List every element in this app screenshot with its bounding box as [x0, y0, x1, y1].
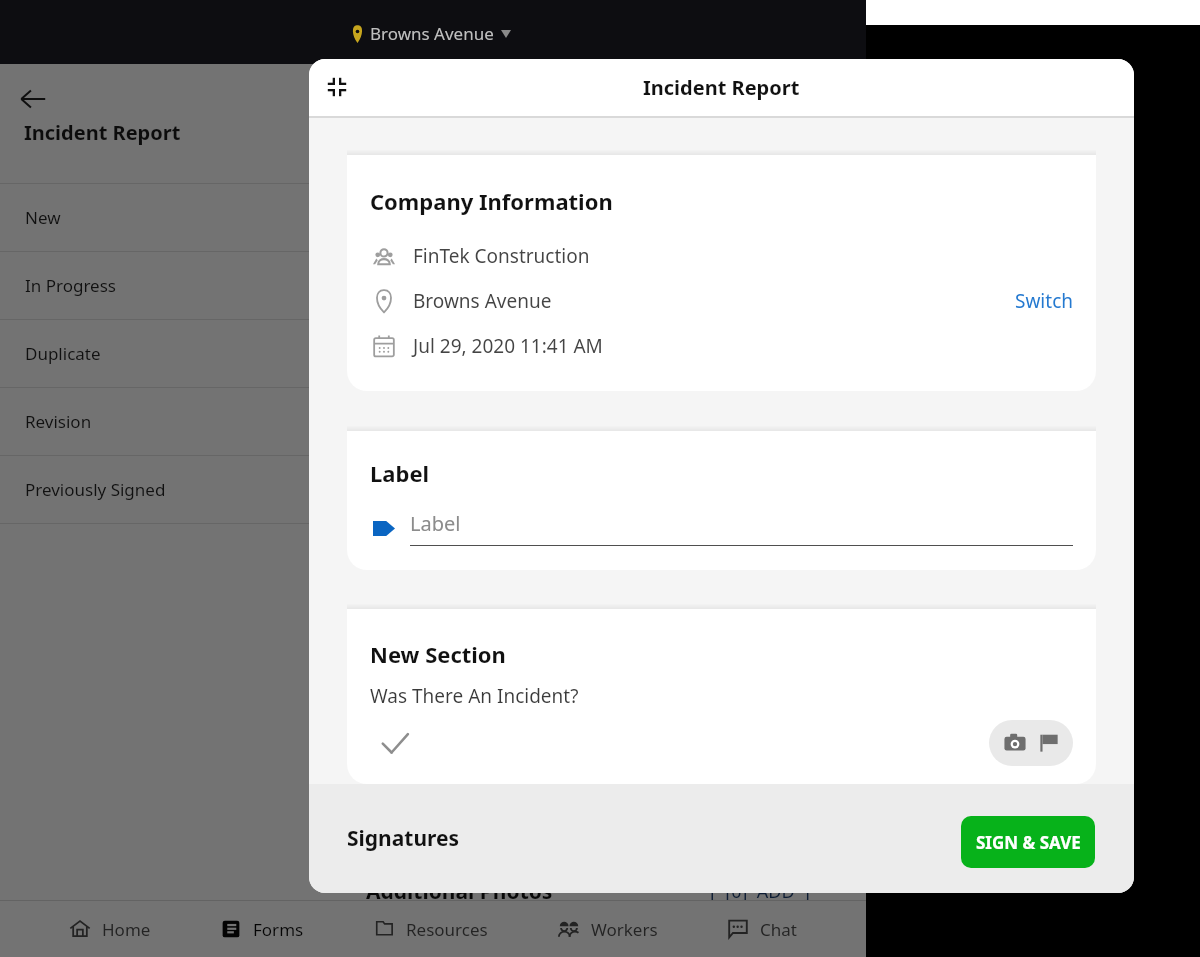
button[interactable]: Home: [69, 901, 151, 957]
button[interactable]: SIGN & SAVE: [961, 816, 1095, 868]
button[interactable]: Switch: [1015, 288, 1073, 314]
staticText: Signatures: [347, 824, 460, 853]
staticText: Duplicate: [25, 342, 101, 365]
staticText: Browns Avenue: [413, 288, 552, 314]
staticText: Label: [410, 510, 461, 537]
staticText: Company Information: [370, 186, 613, 216]
staticText: Browns Avenue: [370, 22, 494, 45]
staticText: Incident Report: [24, 119, 181, 146]
staticText: In Progress: [25, 274, 116, 297]
button[interactable]: New: [0, 184, 866, 251]
button[interactable]: Chat: [727, 901, 797, 957]
staticText: Was There An Incident?: [370, 683, 579, 709]
button[interactable]: Duplicate: [0, 320, 866, 387]
staticText: Revision: [25, 410, 92, 433]
button[interactable]: Collapse: [327, 77, 347, 97]
button[interactable]: Revision: [0, 388, 866, 455]
button[interactable]: Workers: [558, 901, 658, 957]
staticText: Home: [102, 918, 151, 941]
button[interactable]: Forms: [220, 901, 304, 957]
staticText: Forms: [253, 918, 304, 941]
staticText: Switch: [1015, 288, 1073, 314]
staticText: Label: [370, 458, 430, 488]
staticText: Workers: [591, 918, 658, 941]
staticText: Chat: [760, 918, 797, 941]
staticText: New Section: [370, 639, 506, 669]
staticText: [ [0] ADD ]: [710, 879, 810, 904]
staticText: New: [25, 206, 61, 229]
staticText: Incident Report: [643, 74, 800, 101]
button[interactable]: Resources: [373, 901, 488, 957]
button[interactable]: In Progress: [0, 252, 866, 319]
button[interactable]: Previously Signed: [0, 456, 866, 523]
staticText: Resources: [406, 918, 488, 941]
staticText: Previously Signed: [25, 478, 166, 501]
button[interactable]: Back: [20, 86, 46, 112]
staticText: Jul 29, 2020 11:41 AM: [413, 333, 603, 359]
button[interactable]: Browns Avenue: [351, 22, 511, 45]
staticText: Additional Photos: [366, 877, 553, 906]
staticText: FinTek Construction: [413, 243, 590, 269]
staticText: SIGN & SAVE: [976, 831, 1081, 854]
button[interactable]: [989, 720, 1073, 766]
